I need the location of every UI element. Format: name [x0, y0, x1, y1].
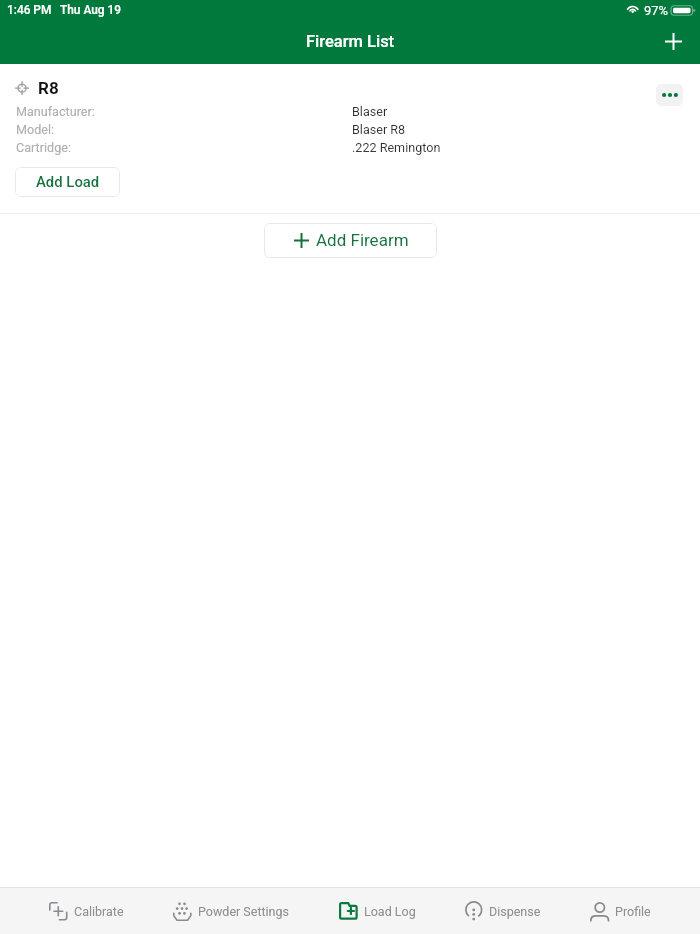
button[interactable]: Load Log	[339, 888, 416, 934]
button[interactable]: Profile	[590, 888, 651, 934]
staticText: Model:	[16, 122, 350, 137]
staticText: Load Log	[364, 904, 416, 919]
staticText: Manufacturer:	[16, 104, 350, 119]
staticText: Blaser	[352, 104, 700, 119]
staticText: Cartridge:	[16, 140, 350, 155]
staticText: Firearm List	[306, 32, 395, 51]
staticText: Add Load	[36, 173, 100, 190]
button[interactable]: Add Load	[15, 167, 120, 197]
staticText: 1:46 PM	[7, 3, 52, 17]
staticText: .222 Remington	[352, 140, 700, 155]
staticText: Add Firearm	[316, 230, 409, 250]
button[interactable]: More options	[656, 84, 683, 106]
staticText: Thu Aug 19	[60, 3, 122, 17]
button[interactable]: Add firearm	[656, 24, 690, 58]
button[interactable]: Powder Settings	[173, 888, 289, 934]
staticText: Powder Settings	[198, 904, 289, 919]
staticText: Calibrate	[74, 904, 124, 919]
staticText: Blaser R8	[352, 122, 700, 137]
button[interactable]: Dispense	[465, 888, 541, 934]
button[interactable]: Add Firearm	[264, 223, 437, 258]
button[interactable]: R8	[0, 72, 700, 104]
staticText: Dispense	[489, 904, 541, 919]
staticText: Profile	[615, 904, 651, 919]
staticText: R8	[38, 78, 59, 98]
staticText: 97%	[644, 3, 669, 18]
button[interactable]: Calibrate	[49, 888, 124, 934]
